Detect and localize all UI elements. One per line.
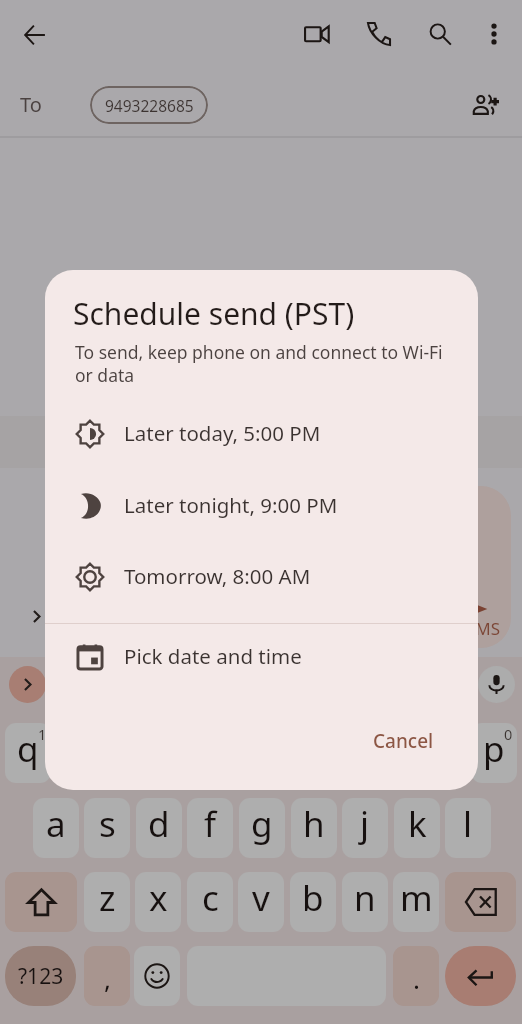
button[interactable]: c [187,872,233,932]
button[interactable]: , [84,946,130,1006]
staticText: i [386,725,396,773]
button[interactable]: Pick date and time [45,621,478,692]
button[interactable]: ?123 [5,946,76,1006]
staticText: , [104,961,111,996]
staticText: To send, keep phone on and connect to Wi… [75,340,445,387]
button[interactable]: q [5,723,51,783]
staticText: 9493228685 [105,95,194,116]
staticText: b [302,874,324,922]
button[interactable]: p [471,723,517,783]
button[interactable]: Search [418,12,462,56]
button[interactable]: . [393,946,439,1006]
button[interactable]: a [33,798,79,858]
staticText: Cancel [373,728,434,754]
staticText: Later today, 5:00 PM [124,419,321,447]
button[interactable]: Back [13,13,57,57]
staticText: ?123 [18,962,64,991]
button[interactable]: h [291,798,337,858]
button[interactable]: Shift [5,872,77,932]
staticText: Tomorrow, 8:00 AM [124,562,311,590]
staticText: . [413,961,420,996]
staticText: To [20,91,42,118]
button[interactable]: s [84,798,130,858]
button[interactable]: Video call [295,12,339,56]
button[interactable]: Later today, 5:00 PM [45,398,478,469]
staticText: z [99,874,116,922]
button[interactable]: d [136,798,182,858]
staticText: k [408,800,427,848]
button[interactable]: Enter [445,946,516,1006]
button[interactable]: z [84,872,130,932]
staticText: Later tonight, 9:00 PM [124,491,338,519]
staticText: l [463,800,473,848]
button[interactable]: f [187,798,233,858]
button[interactable]: x [135,872,181,932]
button[interactable]: Expand suggestions [9,666,46,703]
button[interactable]: v [238,872,284,932]
staticText: Pick date and time [124,642,302,670]
staticText: 8 [401,724,410,744]
staticText: g [251,800,273,848]
button[interactable]: n [342,872,388,932]
button[interactable]: i [368,723,414,783]
staticText: o [431,725,453,773]
button[interactable]: More options [474,14,514,54]
staticText: n [354,874,376,922]
button[interactable]: Emoji [134,946,180,1006]
staticText: v [252,874,270,922]
button[interactable]: k [394,798,440,858]
staticText: x [149,874,168,922]
staticText: p [483,725,505,773]
staticText: j [360,800,370,848]
staticText: SMS [466,617,501,640]
staticText: q [17,725,39,773]
button[interactable]: Send SMS [440,486,511,648]
staticText: 1 [38,724,47,744]
button[interactable]: m [393,872,439,932]
button[interactable]: 9493228685 [90,86,208,124]
staticText: h [303,800,325,848]
staticText: 0 [504,724,513,744]
button[interactable]: Add people [464,83,508,127]
staticText: d [148,800,170,848]
button[interactable]: Call [357,12,401,56]
button[interactable]: Backspace [445,872,516,932]
staticText: a [46,800,66,848]
button[interactable]: Tomorrow, 8:00 AM [45,541,478,612]
staticText: s [99,800,116,848]
staticText: m [400,874,433,922]
button[interactable]: o [419,723,465,783]
button[interactable]: j [342,798,388,858]
button[interactable]: Later tonight, 9:00 PM [45,470,478,541]
staticText: c [202,874,219,922]
button[interactable]: b [290,872,336,932]
button[interactable]: Voice input [478,666,515,703]
staticText: f [204,800,217,848]
staticText: Schedule send (PST) [73,293,355,334]
button[interactable]: g [239,798,285,858]
button[interactable]: l [445,798,491,858]
button[interactable]: Cancel [370,719,436,763]
